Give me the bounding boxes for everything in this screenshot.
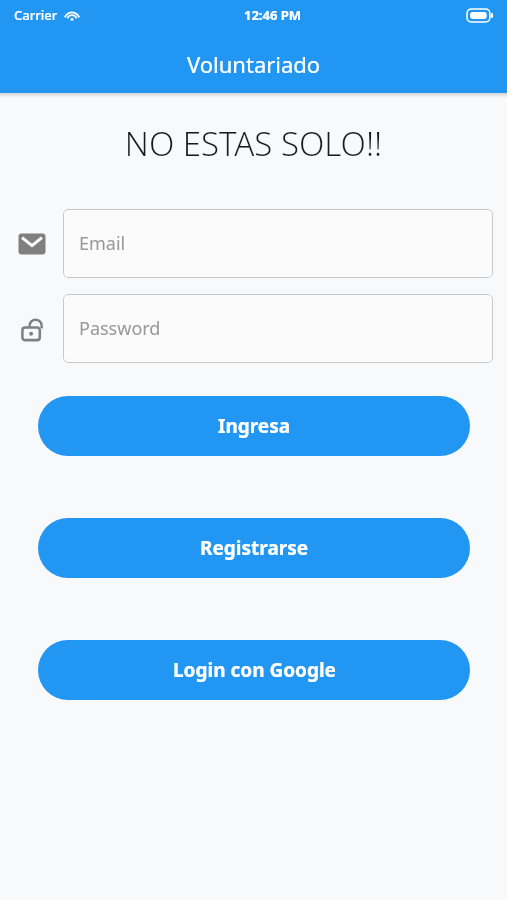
staticText: Email: [79, 231, 126, 256]
button[interactable]: Registrarse: [38, 518, 470, 578]
staticText: Carrier: [14, 6, 58, 24]
staticText: Password: [79, 316, 161, 341]
staticText: Ingresa: [218, 413, 291, 439]
button[interactable]: Ingresa: [38, 396, 470, 456]
staticText: Registrarse: [200, 535, 309, 561]
button[interactable]: Login con Google: [38, 640, 470, 700]
other: Password: [17, 314, 47, 344]
button[interactable]: Password: [63, 294, 493, 363]
staticText: 12:46 PM: [244, 6, 302, 24]
staticText: Login con Google: [173, 657, 336, 683]
staticText: Voluntariado: [187, 49, 321, 79]
other: Email: [17, 229, 47, 259]
button[interactable]: Email: [63, 209, 493, 278]
staticText: NO ESTAS SOLO!!: [0, 121, 507, 166]
